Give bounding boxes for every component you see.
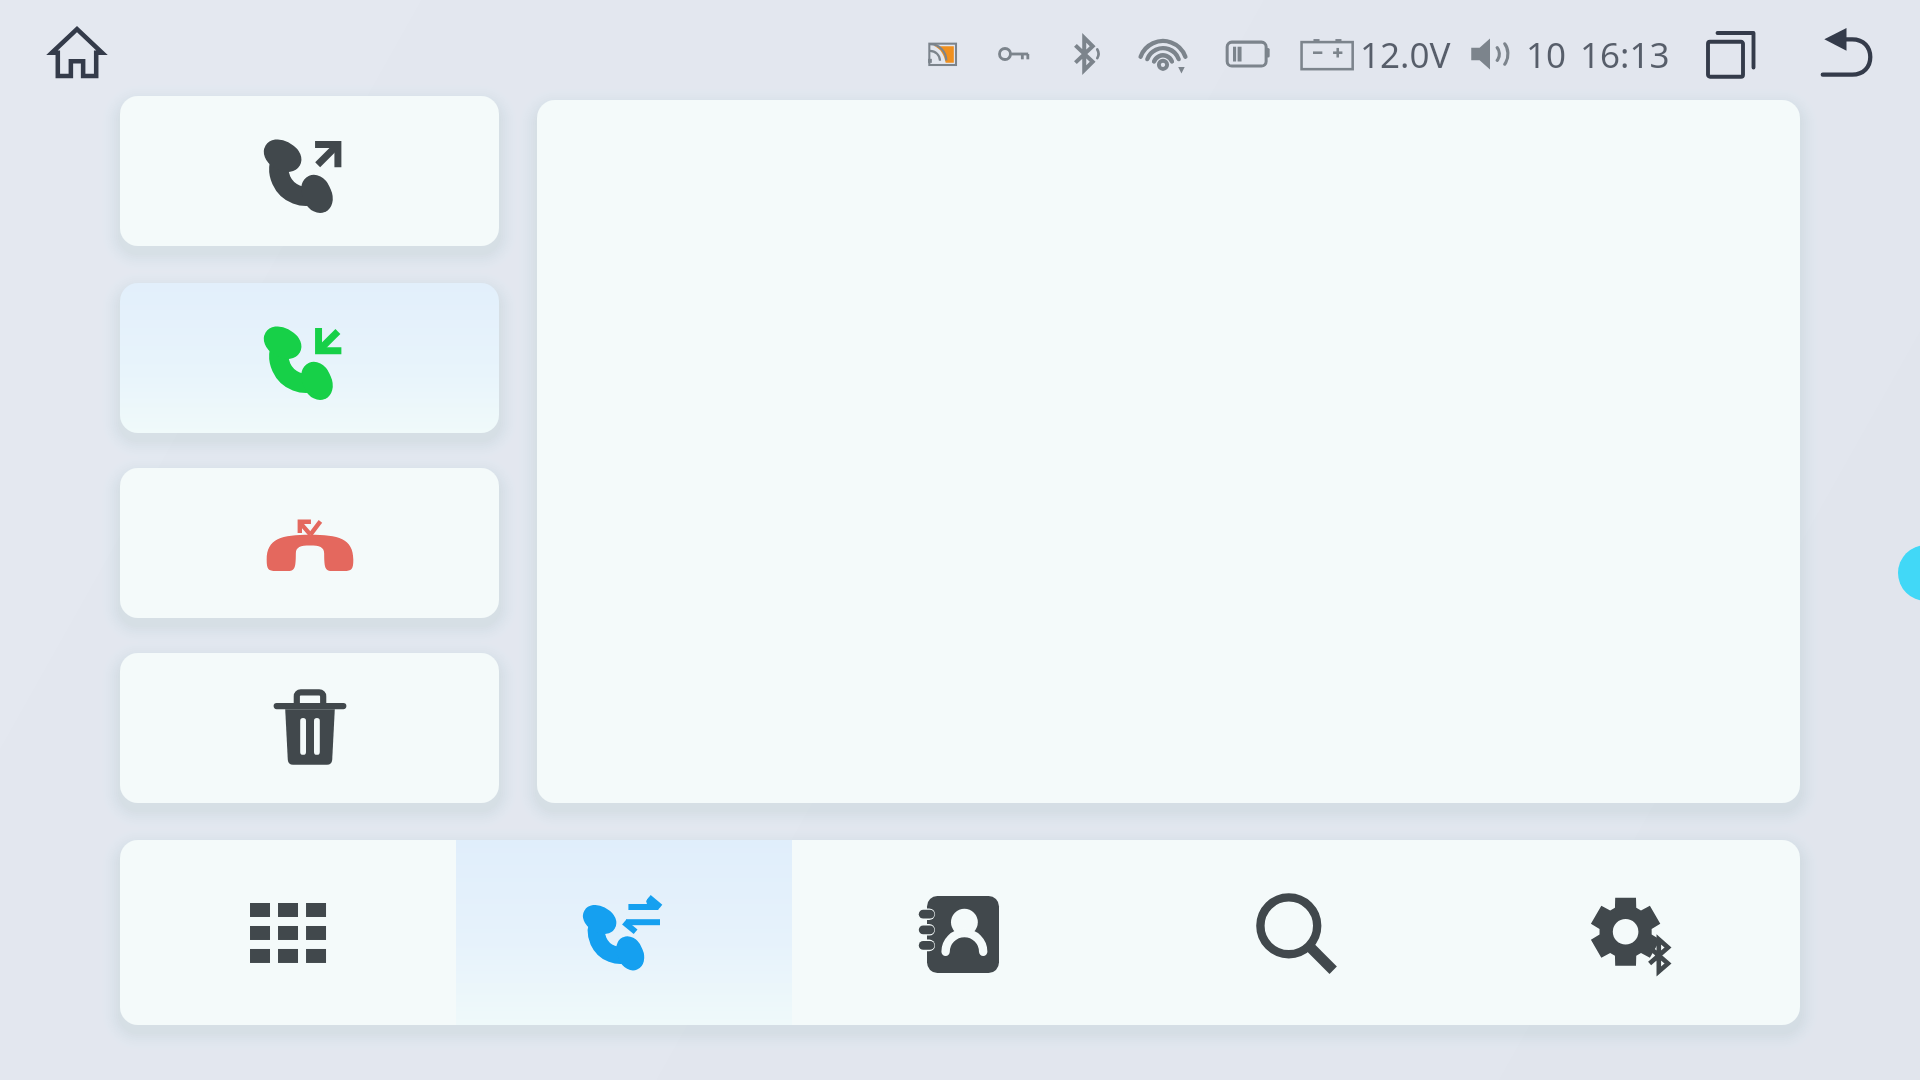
button[interactable]: Missed calls (120, 468, 499, 618)
staticText: 12.0V (1360, 31, 1451, 79)
button[interactable]: Dialpad (120, 840, 456, 1025)
button[interactable]: Outgoing calls (120, 96, 499, 246)
staticText: 16:13 (1580, 31, 1670, 79)
button[interactable]: Contacts (792, 840, 1128, 1025)
button[interactable]: Search (1128, 840, 1464, 1025)
button[interactable]: Back (1812, 20, 1880, 88)
button[interactable]: Call log (456, 840, 792, 1025)
button[interactable]: Recent apps (1698, 20, 1766, 88)
button[interactable]: Settings (1464, 840, 1800, 1025)
button[interactable]: Open side panel (1898, 545, 1920, 601)
button[interactable]: Home (40, 16, 114, 90)
staticText: 10 (1526, 31, 1567, 79)
button[interactable]: Delete (120, 653, 499, 803)
button[interactable]: Incoming calls (120, 283, 499, 433)
